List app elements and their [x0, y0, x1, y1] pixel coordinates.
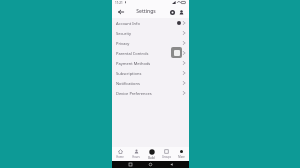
- button[interactable]: Home: [112, 147, 128, 161]
- staticText: Build: [148, 156, 155, 160]
- button[interactable]: Payment Methods: [112, 58, 189, 68]
- staticText: Settings: [136, 8, 156, 15]
- button[interactable]: Back: [169, 162, 174, 167]
- button[interactable]: Account: [177, 8, 185, 16]
- staticText: Account Info: [116, 21, 140, 26]
- staticText: Home: [116, 155, 124, 159]
- button[interactable]: More: [174, 147, 189, 161]
- staticText: Hours: [132, 155, 140, 159]
- staticText: Payment Methods: [116, 61, 151, 66]
- staticText: Security: [116, 31, 132, 36]
- button[interactable]: Privacy: [112, 38, 189, 48]
- button[interactable]: Build: [144, 147, 159, 161]
- staticText: Privacy: [116, 41, 130, 46]
- staticText: Device Preferences: [116, 91, 152, 96]
- staticText: Parental Controls: [116, 51, 149, 56]
- button[interactable]: Home: [148, 162, 153, 167]
- button[interactable]: Account Info: [112, 18, 189, 28]
- button[interactable]: Subscriptions: [112, 68, 189, 78]
- staticText: More: [178, 155, 185, 159]
- staticText: Groups: [162, 155, 171, 159]
- button[interactable]: Groups: [159, 147, 174, 161]
- button[interactable]: Back: [116, 7, 125, 16]
- staticText: 11:21: [115, 1, 123, 5]
- button[interactable]: Recents: [128, 162, 133, 167]
- staticText: Subscriptions: [116, 71, 142, 76]
- button[interactable]: Hours: [128, 147, 144, 161]
- staticText: Notifications: [116, 81, 140, 86]
- button[interactable]: Notifications: [112, 78, 189, 88]
- button[interactable]: Device Preferences: [112, 88, 189, 98]
- button[interactable]: Settings options: [168, 8, 176, 16]
- button[interactable]: Security: [112, 28, 189, 38]
- button[interactable]: Parental Controls: [112, 48, 189, 58]
